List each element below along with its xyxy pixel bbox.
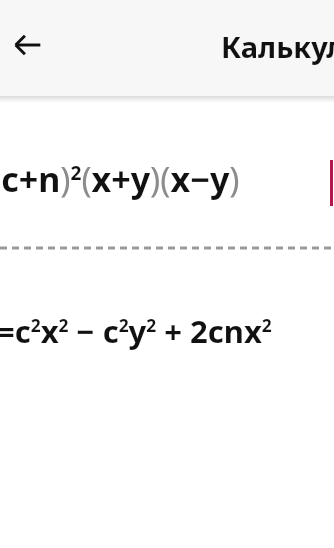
button[interactable]: Назад <box>4 21 52 69</box>
staticText: Калькулятор <box>221 27 334 66</box>
staticText: (c+n)2(x+y)(x−y) <box>0 156 240 202</box>
staticText: =c2x2 − c2y2 + 2cnx2 <box>0 310 272 352</box>
